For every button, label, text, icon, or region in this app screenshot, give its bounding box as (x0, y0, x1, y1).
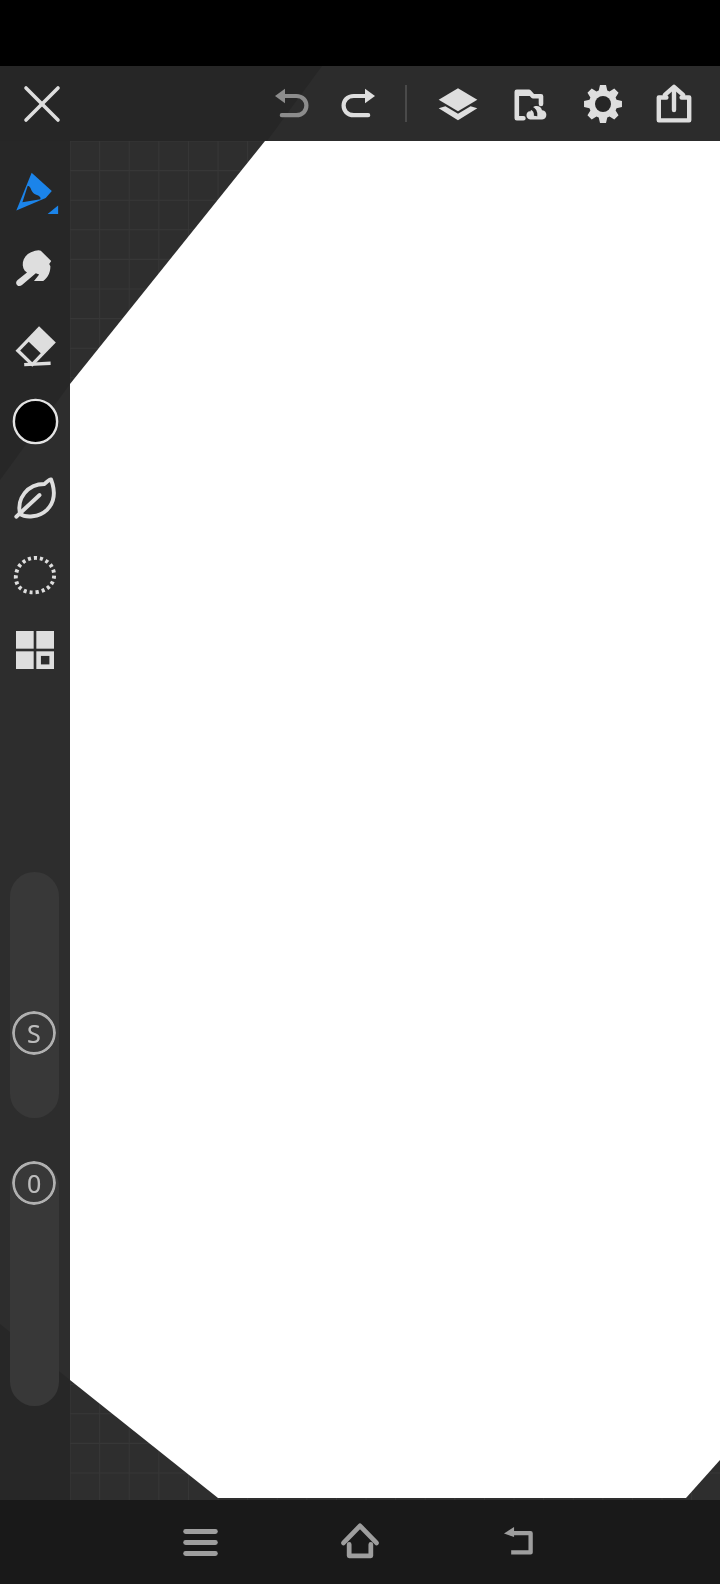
button[interactable]: Color (0, 383, 70, 459)
button[interactable]: Effects (0, 459, 70, 535)
button[interactable]: Back (465, 1500, 575, 1584)
staticText: S (27, 1016, 41, 1050)
button[interactable]: Redo (321, 66, 393, 141)
button[interactable]: Undo (257, 66, 329, 141)
button[interactable]: Smudge (0, 231, 70, 307)
button[interactable]: Eraser (0, 307, 70, 383)
button[interactable] (10, 872, 59, 1118)
button[interactable]: Layout (0, 612, 70, 688)
button[interactable]: Menu (145, 1500, 255, 1584)
button[interactable]: Files (493, 66, 565, 141)
button[interactable]: Settings (567, 66, 639, 141)
staticText: 0 (27, 1166, 42, 1200)
button[interactable]: Close (6, 66, 78, 141)
button[interactable]: Share (638, 66, 710, 141)
button[interactable]: Brush (0, 155, 70, 231)
button[interactable]: Select (0, 535, 70, 611)
button[interactable] (10, 1162, 59, 1406)
button[interactable]: Layers (422, 66, 494, 141)
button[interactable]: Home (305, 1500, 415, 1584)
